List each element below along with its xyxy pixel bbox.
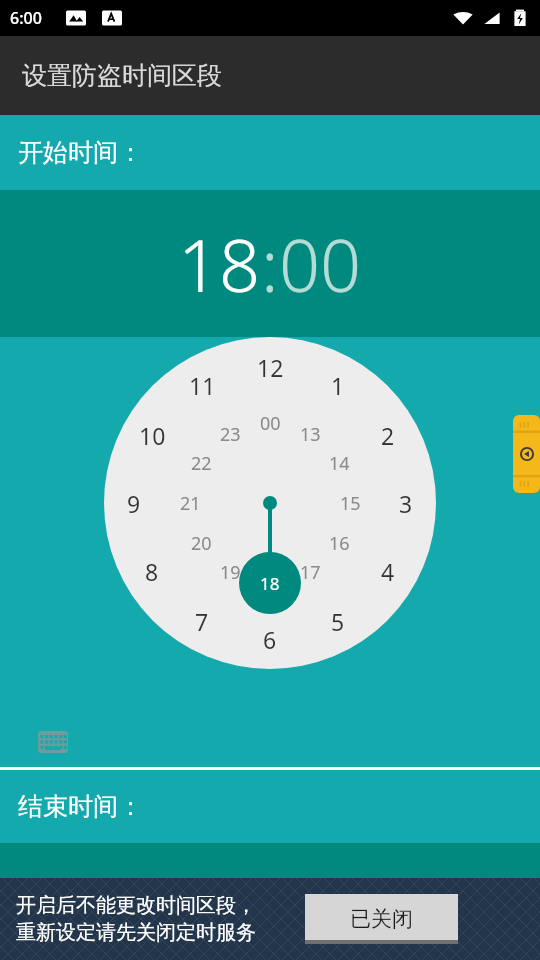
staticText: 6:00 (10, 7, 42, 29)
staticText: 18 (260, 572, 280, 595)
staticText: 21 (180, 491, 201, 516)
staticText: 开始时间： (18, 137, 143, 168)
staticText: 开启后不能更改时间区段， (16, 893, 256, 918)
staticText: 5 (331, 606, 345, 637)
staticText: 19 (220, 560, 241, 585)
staticText: 1 (331, 370, 345, 401)
staticText: 6 (263, 624, 277, 655)
staticText: 22 (191, 451, 212, 476)
button[interactable]: 18 (0, 190, 540, 337)
staticText: 已关闭 (350, 906, 413, 932)
staticText: 结束时间： (18, 791, 143, 822)
button[interactable] (0, 337, 540, 767)
staticText: 4 (381, 556, 395, 587)
staticText: 重新设定请先关闭定时服务 (16, 920, 256, 945)
staticText: 11 (189, 370, 216, 401)
staticText: 20 (191, 531, 212, 556)
staticText: 8 (145, 556, 159, 587)
button[interactable]: 开始时间： (0, 115, 540, 190)
button[interactable]: Switch to text input (38, 731, 68, 753)
button[interactable]: 已关闭 (305, 894, 458, 944)
staticText: 12 (257, 352, 284, 383)
staticText: 14 (329, 451, 350, 476)
staticText: 10 (139, 420, 166, 451)
staticText: 23 (220, 422, 241, 447)
staticText: 17 (300, 560, 321, 585)
staticText: 设置防盗时间区段 (22, 60, 222, 91)
staticText: 7 (195, 606, 209, 637)
staticText: 13 (300, 422, 321, 447)
staticText: 3 (399, 488, 413, 519)
staticText: 00 (279, 215, 362, 313)
staticText: 16 (329, 531, 350, 556)
staticText: 00 (260, 411, 281, 436)
staticText: : (261, 215, 279, 313)
staticText: 2 (381, 420, 395, 451)
button[interactable]: 结束时间： (0, 770, 540, 843)
button[interactable]: Open side panel (513, 415, 540, 493)
staticText: 18 (178, 215, 261, 313)
staticText: 15 (340, 491, 361, 516)
staticText: 9 (127, 488, 141, 519)
